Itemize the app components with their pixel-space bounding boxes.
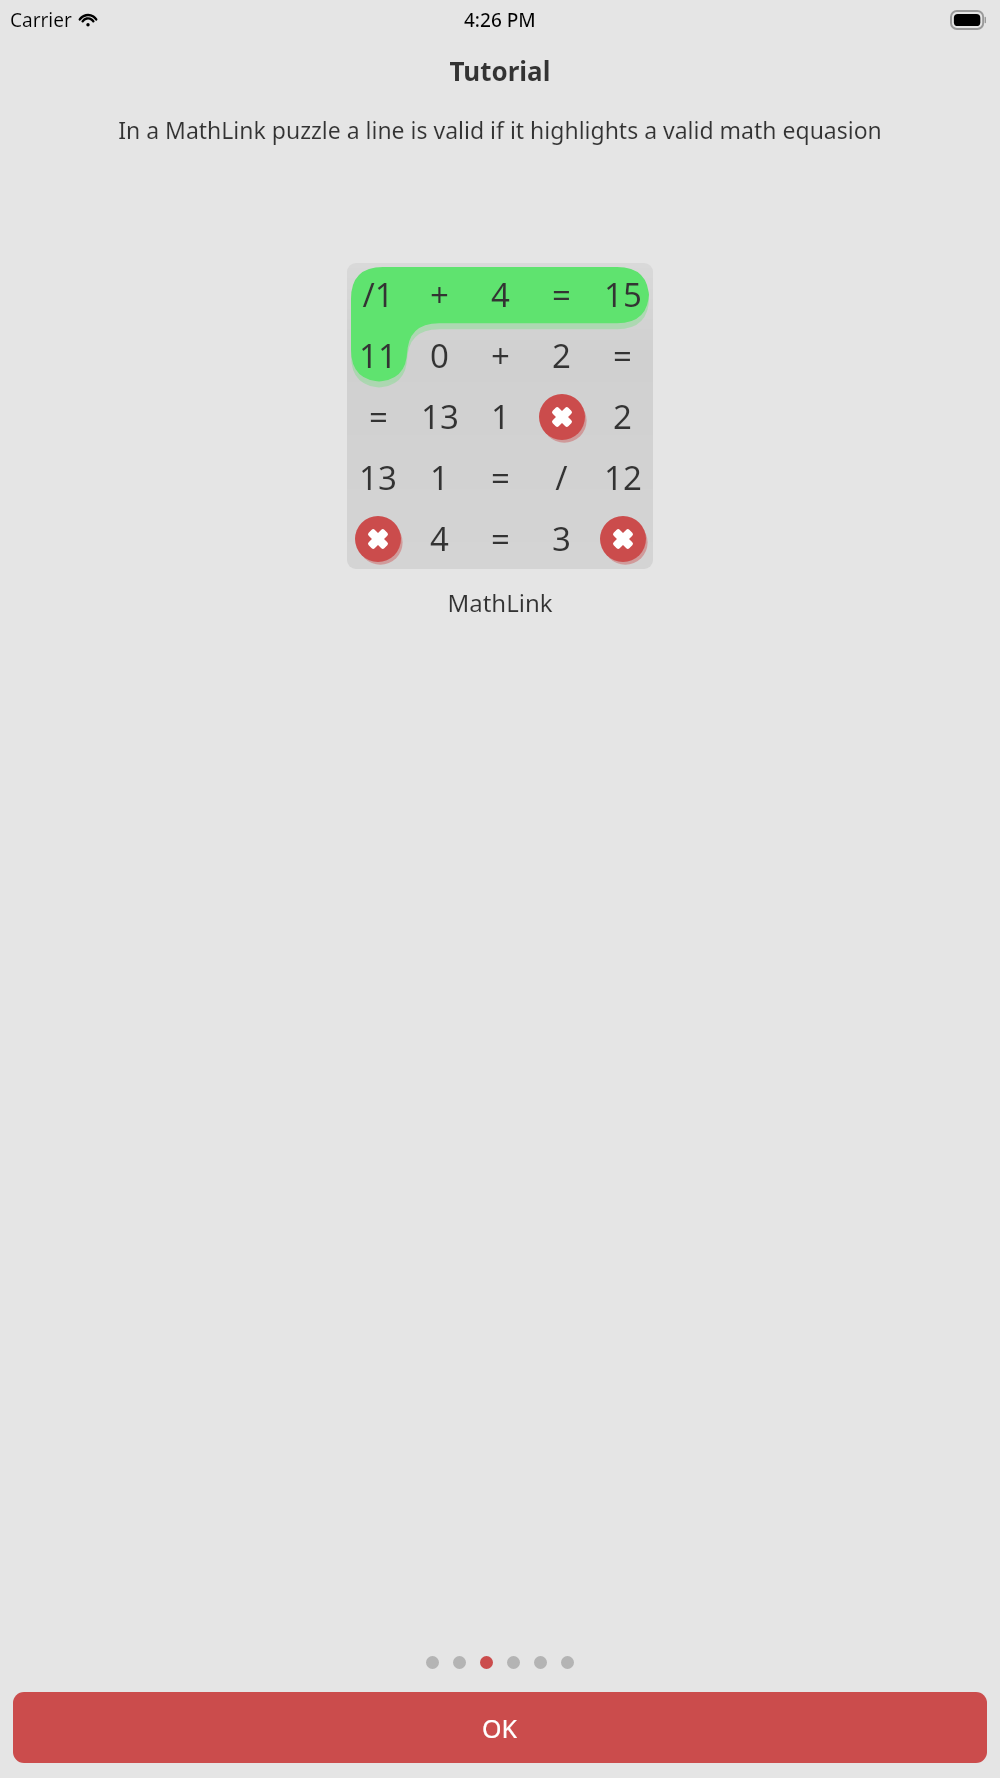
button[interactable]: = — [531, 263, 592, 325]
button[interactable]: 13 — [347, 447, 409, 508]
button[interactable]: = — [592, 325, 653, 386]
staticText: 4:26 PM — [464, 7, 536, 33]
staticText: Carrier — [10, 7, 72, 33]
button[interactable]: Page 2 — [453, 1656, 466, 1669]
staticText: 2 — [552, 333, 571, 378]
staticText: Tutorial — [0, 53, 1000, 88]
staticText: / — [555, 455, 568, 500]
staticText: = — [369, 394, 388, 439]
staticText: 1 — [430, 455, 449, 500]
staticText: 4 — [491, 272, 510, 317]
staticText: 2 — [613, 394, 632, 439]
staticText: 12 — [604, 455, 642, 500]
staticText: 4 — [430, 516, 449, 561]
staticText: 0 — [430, 333, 449, 378]
staticText: 1 — [491, 394, 510, 439]
button[interactable]: 1 — [409, 447, 470, 508]
button[interactable]: 1 — [470, 386, 531, 447]
button[interactable]: OK — [13, 1692, 987, 1763]
button[interactable]: Page 3 — [480, 1656, 493, 1669]
other: Invalid cell — [539, 394, 585, 440]
button[interactable]: 4 — [409, 508, 470, 569]
button[interactable]: 13 — [409, 386, 470, 447]
button[interactable]: 15 — [592, 263, 653, 325]
staticText: OK — [482, 1711, 518, 1745]
button[interactable]: 11 — [347, 325, 409, 386]
button[interactable]: + — [470, 325, 531, 386]
staticText: MathLink — [0, 586, 1000, 619]
staticText: 13 — [421, 394, 459, 439]
button[interactable]: 3 — [531, 508, 592, 569]
staticText: 13 — [359, 455, 397, 500]
button[interactable]: = — [347, 386, 409, 447]
button[interactable]: Invalid cell — [531, 386, 592, 447]
staticText: + — [491, 333, 510, 378]
button[interactable]: + — [409, 263, 470, 325]
button[interactable]: Invalid cell — [592, 508, 653, 569]
staticText: /1 — [362, 272, 394, 317]
button[interactable]: 12 — [592, 447, 653, 508]
staticText: = — [613, 333, 632, 378]
other: Invalid cell — [355, 516, 401, 562]
staticText: = — [491, 455, 510, 500]
staticText: 3 — [552, 516, 571, 561]
staticText: = — [552, 272, 571, 317]
staticText: + — [430, 272, 449, 317]
staticText: = — [491, 516, 510, 561]
button[interactable]: = — [470, 508, 531, 569]
staticText: In a MathLink puzzle a line is valid if … — [13, 114, 987, 145]
button[interactable]: / — [531, 447, 592, 508]
button[interactable]: Page 5 — [534, 1656, 547, 1669]
button[interactable]: = — [470, 447, 531, 508]
button[interactable]: 0 — [409, 325, 470, 386]
other: Invalid cell — [600, 516, 646, 562]
staticText: 11 — [359, 333, 397, 378]
button[interactable]: Page 4 — [507, 1656, 520, 1669]
button[interactable]: Page 6 — [561, 1656, 574, 1669]
staticText: 15 — [604, 272, 642, 317]
button[interactable]: 2 — [592, 386, 653, 447]
button[interactable]: Page 1 — [426, 1656, 439, 1669]
button[interactable]: /1 — [347, 263, 409, 325]
button[interactable]: 2 — [531, 325, 592, 386]
button[interactable]: Invalid cell — [347, 508, 409, 569]
button[interactable]: 4 — [470, 263, 531, 325]
